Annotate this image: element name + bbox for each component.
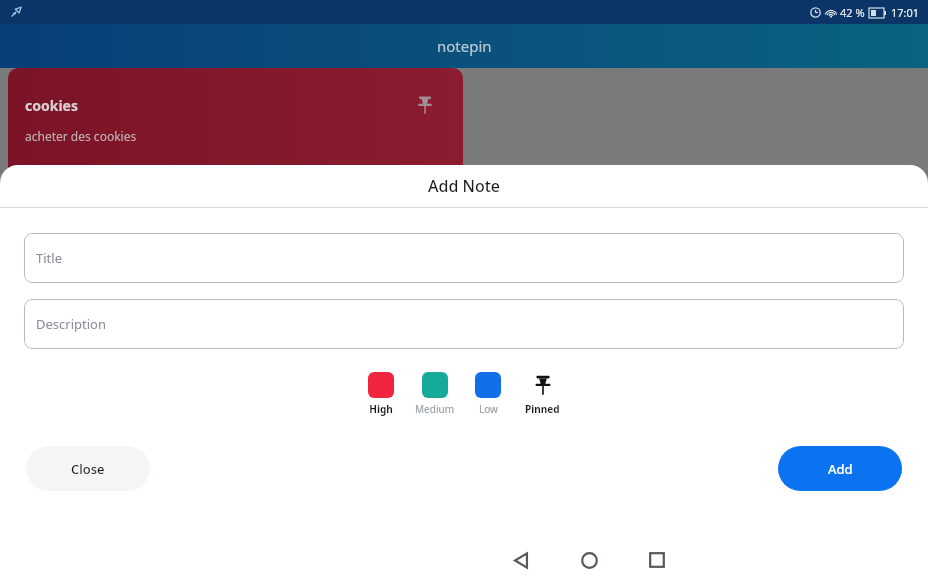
- staticText: Description: [36, 315, 106, 333]
- staticText: Add: [828, 460, 853, 478]
- staticText: notepin: [437, 36, 492, 56]
- staticText: Low: [479, 402, 498, 416]
- button[interactable]: Description: [24, 299, 904, 349]
- button[interactable]: Medium: [413, 372, 456, 416]
- button[interactable]: Home: [567, 540, 611, 580]
- staticText: acheter des cookies: [25, 128, 137, 144]
- button[interactable]: High: [366, 372, 396, 416]
- staticText: 17:01: [891, 5, 920, 20]
- staticText: High: [369, 402, 393, 416]
- button[interactable]: Back: [499, 540, 543, 580]
- button[interactable]: Low: [473, 372, 503, 416]
- button[interactable]: Toggle pinned: [523, 372, 562, 416]
- staticText: Add Note: [428, 175, 500, 197]
- button[interactable]: cookies: [8, 68, 463, 268]
- button[interactable]: Title: [24, 233, 904, 283]
- staticText: Medium: [415, 402, 454, 416]
- button[interactable]: Add: [778, 446, 902, 491]
- button[interactable]: Unpin note: [415, 95, 435, 115]
- button[interactable]: Close: [26, 446, 150, 491]
- staticText: Title: [36, 249, 62, 267]
- staticText: cookies: [25, 96, 78, 115]
- staticText: 42 %: [840, 5, 865, 20]
- staticText: Pinned: [525, 402, 560, 416]
- staticText: Close: [71, 460, 105, 478]
- button[interactable]: Recent apps: [635, 540, 679, 580]
